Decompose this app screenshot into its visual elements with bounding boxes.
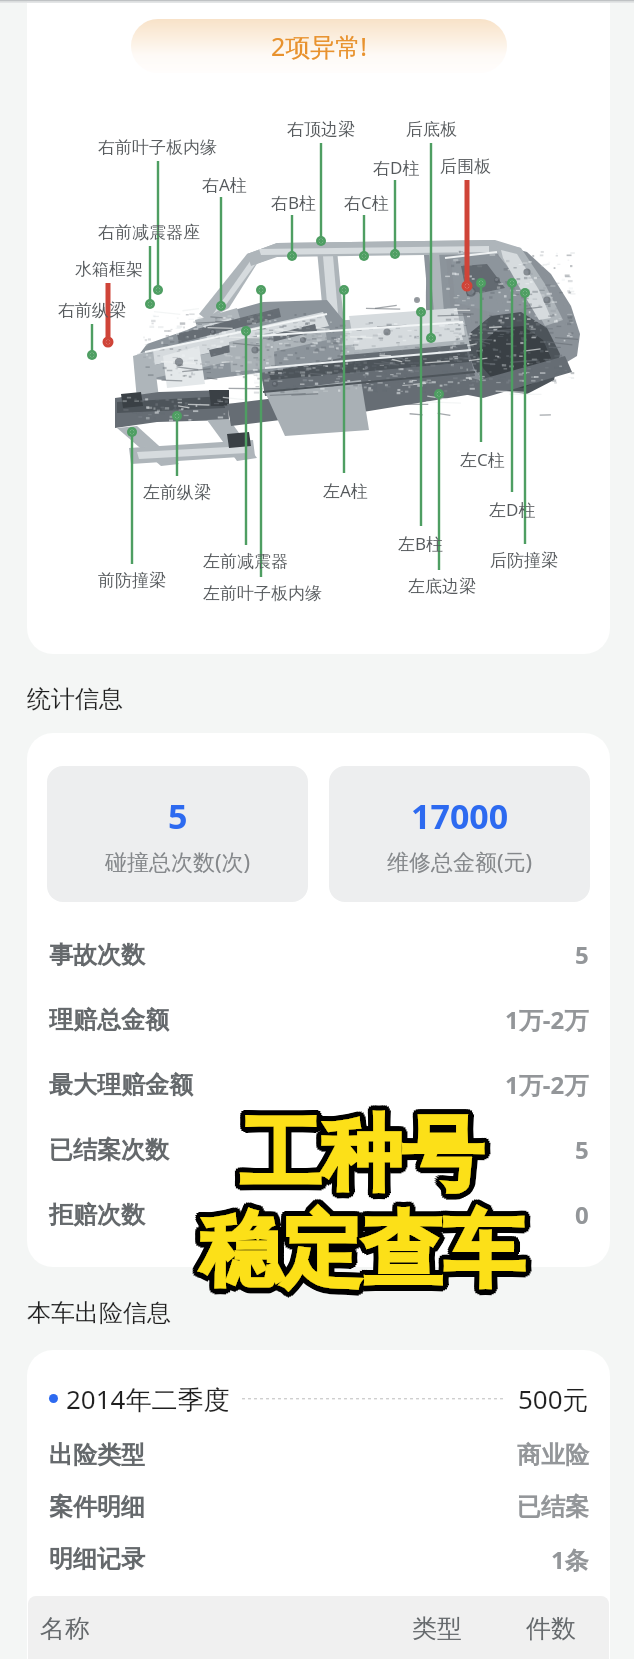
staticText: 稳定查车 bbox=[195, 1200, 519, 1302]
staticText: 工种号 bbox=[241, 1101, 484, 1203]
staticText: 稳定查车 bbox=[200, 1206, 524, 1308]
staticText: 工种号 bbox=[236, 1108, 479, 1210]
staticText: 工种号 bbox=[245, 1106, 488, 1208]
staticText: 后防撞梁 bbox=[490, 550, 558, 571]
staticText: 工种号 bbox=[240, 1110, 483, 1212]
staticText: 前防撞梁 bbox=[98, 570, 166, 591]
staticText: 右前纵梁 bbox=[58, 300, 126, 321]
staticText: 稳定查车 bbox=[196, 1204, 520, 1306]
staticText: 工种号 bbox=[236, 1100, 479, 1202]
staticText: 工种号 bbox=[244, 1100, 487, 1202]
staticText: 稳定查车 bbox=[198, 1202, 522, 1304]
button[interactable]: 案件明细 bbox=[27, 1481, 610, 1533]
staticText: 事故次数 bbox=[49, 940, 145, 970]
button[interactable]: 理赔总金额 bbox=[27, 987, 610, 1052]
staticText: 稳定查车 bbox=[200, 1195, 524, 1297]
staticText: 案件明细 bbox=[49, 1492, 145, 1522]
staticText: 工种号 bbox=[240, 1099, 483, 1201]
staticText: 右前叶子板内缘 bbox=[98, 137, 217, 158]
staticText: 已结案 bbox=[517, 1492, 589, 1522]
button[interactable]: 已结案次数 bbox=[27, 1117, 610, 1182]
staticText: 水箱框架 bbox=[75, 259, 143, 280]
staticText: 左A柱 bbox=[323, 479, 368, 502]
staticText: 稳定查车 bbox=[198, 1205, 522, 1307]
staticText: 500元 bbox=[518, 1381, 589, 1417]
staticText: 左底边梁 bbox=[408, 576, 476, 597]
staticText: 左C柱 bbox=[460, 448, 505, 471]
staticText: 右顶边梁 bbox=[287, 119, 355, 140]
staticText: 拒赔次数 bbox=[49, 1200, 145, 1230]
staticText: 1万-2万 bbox=[505, 1003, 589, 1036]
staticText: 碰撞总次数(次) bbox=[105, 846, 251, 876]
staticText: 工种号 bbox=[238, 1106, 481, 1208]
staticText: 稳定查车 bbox=[201, 1197, 525, 1299]
staticText: 后底板 bbox=[406, 119, 457, 140]
button[interactable]: 明细记录 bbox=[27, 1533, 610, 1585]
button[interactable]: 事故次数 bbox=[27, 922, 610, 987]
staticText: 右A柱 bbox=[202, 173, 247, 196]
staticText: 工种号 bbox=[245, 1102, 488, 1204]
staticText: 维修总金额(元) bbox=[387, 846, 533, 876]
staticText: 左B柱 bbox=[398, 532, 444, 555]
staticText: 稳定查车 bbox=[196, 1196, 520, 1298]
staticText: 明细记录 bbox=[49, 1544, 145, 1574]
staticText: 稳定查车 bbox=[199, 1203, 523, 1305]
staticText: 右D柱 bbox=[373, 156, 420, 179]
button[interactable]: 2项异常! bbox=[131, 19, 507, 73]
staticText: 左前叶子板内缘 bbox=[203, 583, 322, 604]
staticText: 2项异常! bbox=[271, 29, 368, 63]
staticText: 类型 bbox=[412, 1613, 462, 1644]
staticText: 5 bbox=[168, 793, 188, 839]
staticText: 件数 bbox=[526, 1613, 576, 1644]
staticText: 稳定查车 bbox=[202, 1195, 526, 1297]
button[interactable]: 17000 bbox=[329, 766, 590, 902]
staticText: 稳定查车 bbox=[203, 1200, 527, 1302]
button[interactable]: 出险类型 bbox=[27, 1429, 610, 1481]
button[interactable]: 2014年二季度 bbox=[27, 1374, 610, 1423]
staticText: 稳定查车 bbox=[201, 1203, 525, 1305]
button[interactable]: 最大理赔金额 bbox=[27, 1052, 610, 1117]
staticText: 工种号 bbox=[242, 1109, 485, 1211]
staticText: 稳定查车 bbox=[205, 1202, 529, 1304]
staticText: 工种号 bbox=[235, 1102, 478, 1204]
staticText: 稳定查车 bbox=[199, 1197, 523, 1299]
staticText: 工种号 bbox=[235, 1106, 478, 1208]
staticText: 0 bbox=[575, 1198, 589, 1231]
staticText: 稳定查车 bbox=[198, 1195, 522, 1297]
staticText: 工种号 bbox=[242, 1106, 485, 1208]
staticText: 已结案次数 bbox=[49, 1135, 169, 1165]
staticText: 工种号 bbox=[240, 1104, 483, 1206]
staticText: 工种号 bbox=[238, 1102, 481, 1204]
staticText: 稳定查车 bbox=[205, 1198, 529, 1300]
staticText: 工种号 bbox=[246, 1104, 489, 1206]
staticText: 最大理赔金额 bbox=[49, 1070, 193, 1100]
staticText: 右B柱 bbox=[271, 191, 317, 214]
staticText: 工种号 bbox=[235, 1104, 478, 1206]
staticText: 稳定查车 bbox=[202, 1205, 526, 1307]
button[interactable]: 5 bbox=[47, 766, 308, 902]
staticText: 后围板 bbox=[440, 156, 491, 177]
staticText: 工种号 bbox=[244, 1108, 487, 1210]
staticText: 左前纵梁 bbox=[143, 482, 211, 503]
staticText: 稳定查车 bbox=[198, 1198, 522, 1300]
staticText: 左前减震器 bbox=[203, 551, 288, 572]
staticText: 工种号 bbox=[237, 1104, 480, 1206]
staticText: 本车出险信息 bbox=[27, 1298, 171, 1328]
staticText: 理赔总金额 bbox=[49, 1005, 169, 1035]
staticText: 工种号 bbox=[238, 1099, 481, 1201]
staticText: 工种号 bbox=[243, 1104, 486, 1206]
staticText: 稳定查车 bbox=[202, 1202, 526, 1304]
staticText: 右前减震器座 bbox=[98, 222, 200, 243]
staticText: 稳定查车 bbox=[195, 1202, 519, 1304]
staticText: 17000 bbox=[411, 793, 509, 839]
button[interactable]: 拒赔次数 bbox=[27, 1182, 610, 1247]
staticText: 工种号 bbox=[239, 1107, 482, 1209]
staticText: 1万-2万 bbox=[505, 1068, 589, 1101]
staticText: 稳定查车 bbox=[204, 1196, 528, 1298]
staticText: 工种号 bbox=[242, 1099, 485, 1201]
staticText: 商业险 bbox=[517, 1440, 589, 1470]
staticText: 工种号 bbox=[242, 1102, 485, 1204]
staticText: 稳定查车 bbox=[200, 1200, 524, 1302]
staticText: 稳定查车 bbox=[197, 1200, 521, 1302]
staticText: 稳定查车 bbox=[202, 1198, 526, 1300]
